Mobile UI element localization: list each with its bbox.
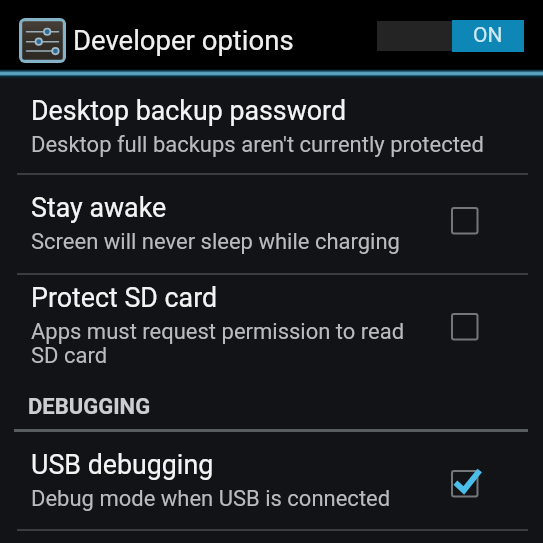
button[interactable]: Developer options — [19, 18, 66, 63]
button[interactable]: Stay awake — [0, 175, 543, 273]
staticText: USB debugging — [31, 449, 214, 480]
button[interactable]: Developer options on/off — [377, 20, 524, 53]
staticText: Debug mode when USB is connected — [31, 486, 391, 512]
button[interactable]: Protect SD card — [0, 275, 543, 383]
staticText: Desktop backup password — [31, 95, 347, 126]
staticText: Desktop full backups aren't currently pr… — [31, 132, 484, 158]
button[interactable]: Checked — [444, 462, 488, 506]
staticText: Apps must request permission to read SD … — [31, 319, 405, 368]
button[interactable]: Unchecked — [444, 305, 488, 349]
button[interactable]: Desktop backup password — [0, 77, 543, 173]
staticText: Developer options — [73, 24, 294, 56]
button[interactable]: USB debugging — [0, 432, 543, 529]
staticText: Protect SD card — [31, 282, 218, 313]
staticText: Stay awake — [31, 192, 167, 223]
button[interactable]: Unchecked — [444, 199, 488, 243]
staticText: ON — [473, 23, 503, 48]
staticText: DEBUGGING — [28, 394, 151, 420]
staticText: Screen will never sleep while charging — [31, 229, 400, 255]
